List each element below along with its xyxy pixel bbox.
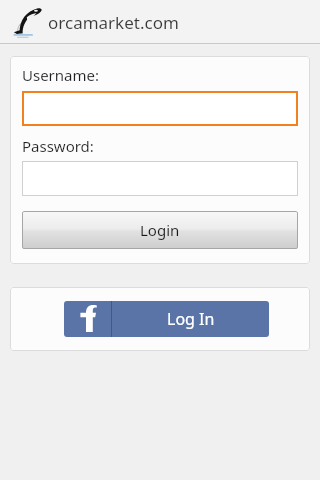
staticText: Password: [22,136,94,156]
button[interactable]: Log In [64,301,269,337]
staticText: orcamarket.com [48,11,179,34]
button[interactable]: Username input [22,91,298,126]
button[interactable]: Login [22,211,298,249]
staticText: Login [140,220,180,240]
staticText: Username: [22,65,99,85]
staticText: Log In [167,308,215,330]
button[interactable]: Password input [22,161,298,196]
